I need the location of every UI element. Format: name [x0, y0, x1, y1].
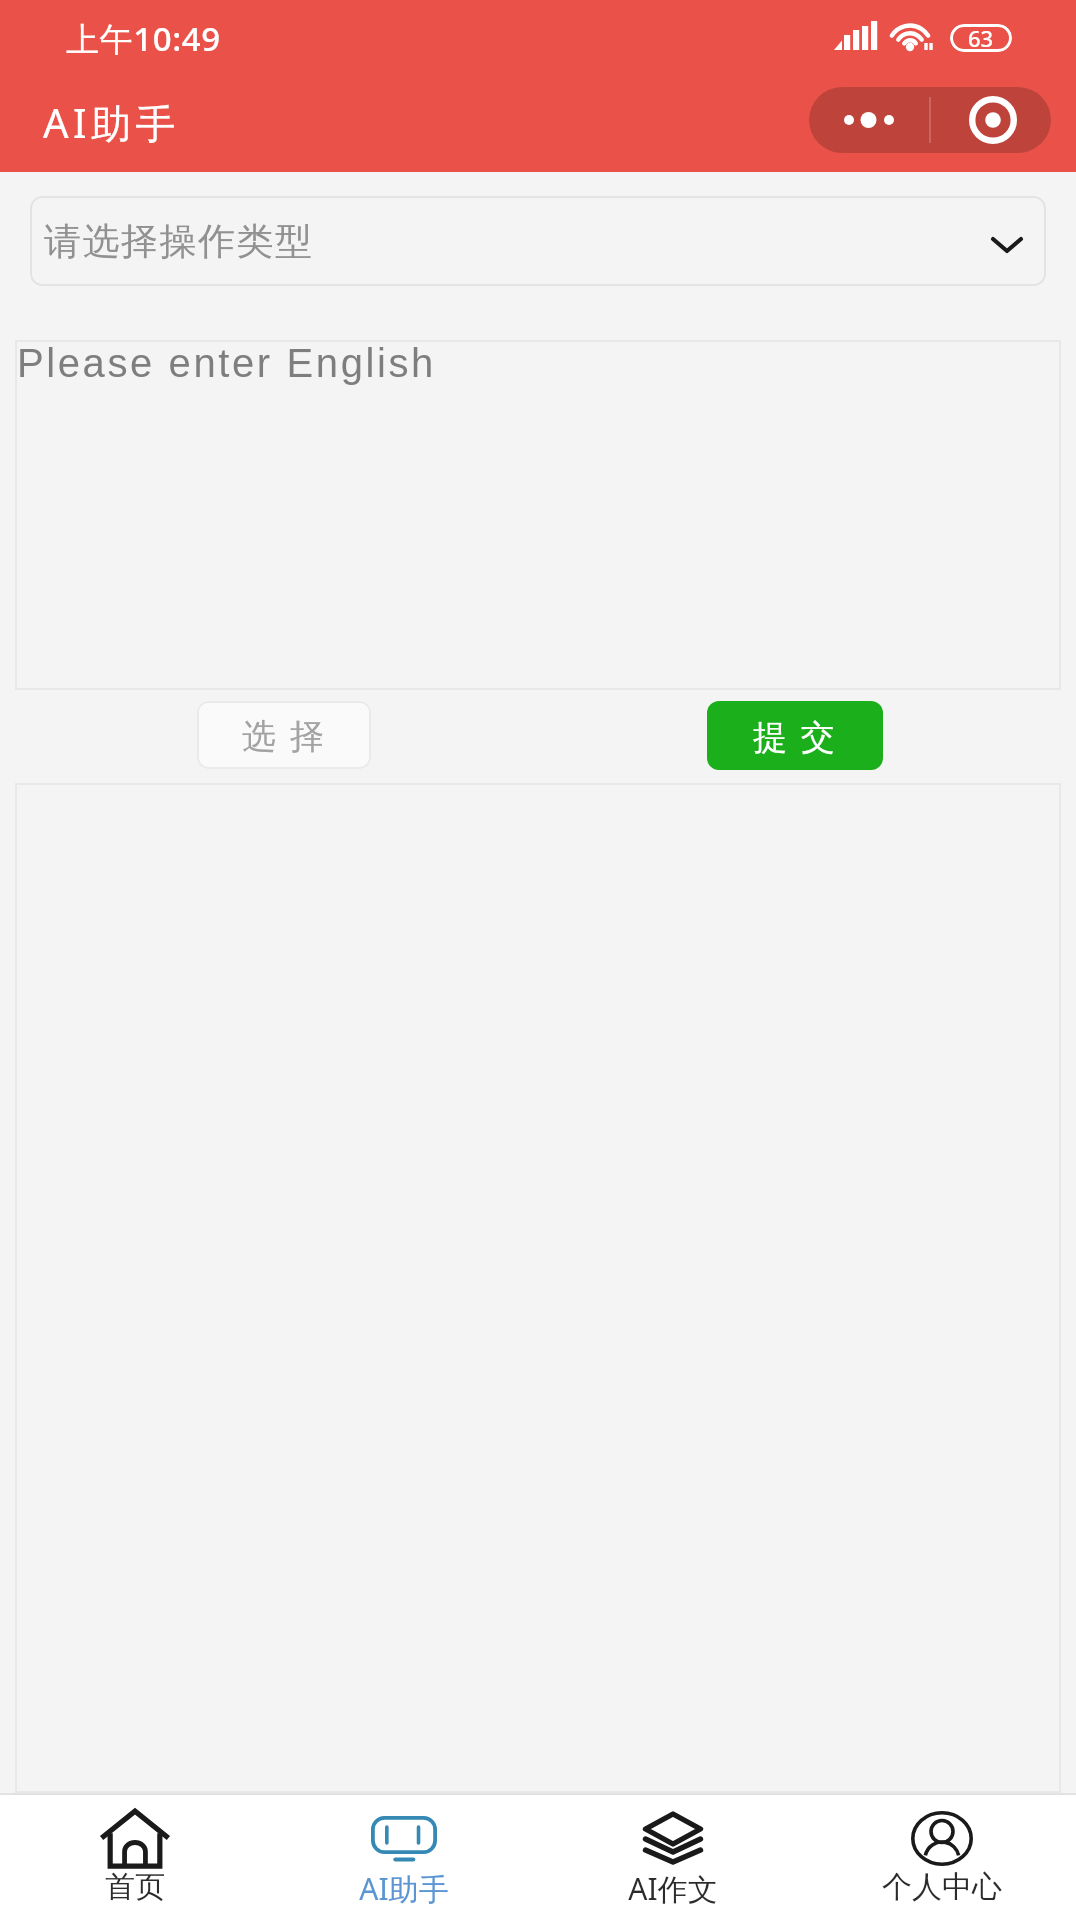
staticText: 63: [968, 24, 994, 51]
button[interactable]: More options: [809, 87, 929, 153]
button[interactable]: AI助手: [269, 1795, 538, 1916]
button[interactable]: 选 择: [197, 701, 371, 769]
staticText: 首页: [105, 1868, 165, 1906]
staticText: AI作文: [628, 1868, 718, 1909]
button[interactable]: 首页: [0, 1795, 269, 1916]
staticText: 个人中心: [882, 1868, 1002, 1906]
staticText: 提 交: [753, 713, 838, 759]
button[interactable]: 请选择操作类型: [30, 196, 1046, 286]
staticText: AI助手: [43, 95, 181, 150]
staticText: Please enter English: [17, 341, 436, 386]
button[interactable]: Please enter English: [15, 340, 1061, 690]
button[interactable]: 提 交: [707, 701, 883, 770]
staticText: 请选择操作类型: [44, 218, 314, 265]
button[interactable]: Close mini program: [931, 87, 1051, 153]
button[interactable]: AI作文: [538, 1795, 807, 1916]
staticText: 选 择: [242, 712, 327, 758]
staticText: AI助手: [359, 1868, 449, 1909]
staticText: 上午10:49: [66, 16, 221, 61]
button[interactable]: 个人中心: [807, 1795, 1076, 1916]
